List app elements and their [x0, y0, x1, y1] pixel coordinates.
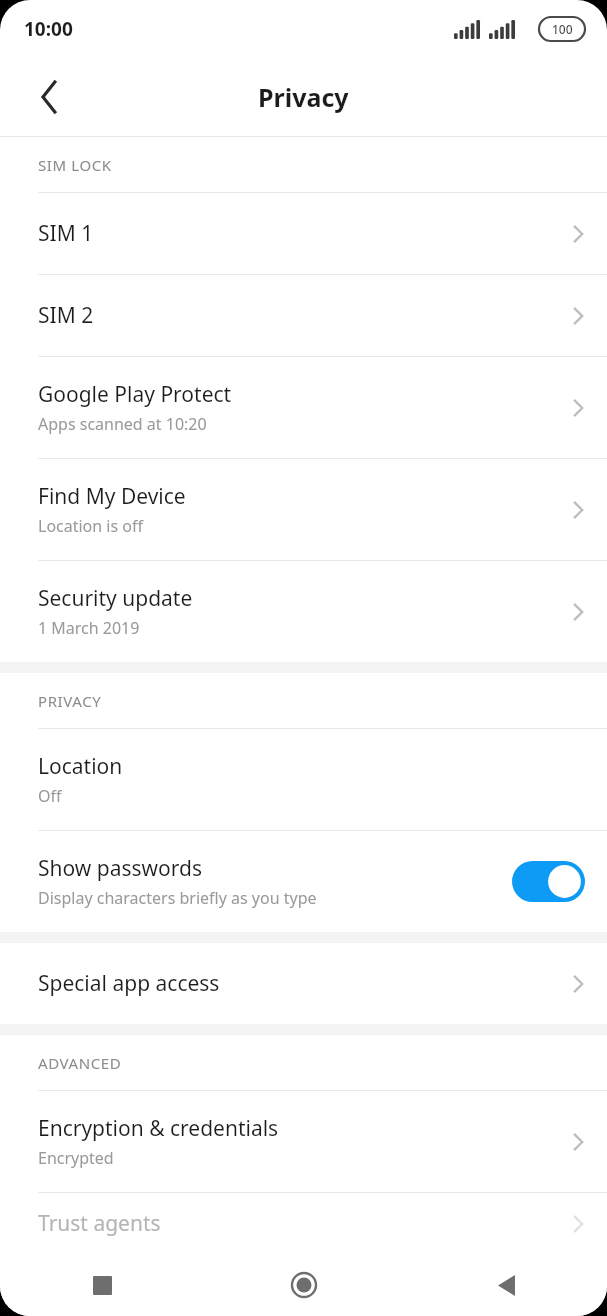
staticText: Security update: [38, 584, 193, 613]
staticText: 1 March 2019: [38, 617, 140, 639]
button[interactable]: Special app access: [0, 943, 607, 1024]
staticText: Find My Device: [38, 482, 186, 511]
button[interactable]: Encryption & credentials: [0, 1091, 607, 1192]
staticText: Special app access: [38, 969, 220, 998]
button[interactable]: Trust agents: [0, 1193, 607, 1254]
staticText: Encrypted: [38, 1147, 114, 1169]
staticText: Google Play Protect: [38, 380, 232, 409]
staticText: SIM LOCK: [38, 155, 112, 175]
staticText: SIM 2: [38, 301, 94, 330]
staticText: Show passwords: [38, 854, 203, 883]
button[interactable]: Security update: [0, 561, 607, 662]
button[interactable]: Recent apps: [76, 1259, 128, 1311]
staticText: Encryption & credentials: [38, 1114, 279, 1143]
button[interactable]: Location: [0, 729, 607, 830]
staticText: 100: [552, 21, 573, 37]
button[interactable]: SIM 2: [0, 275, 607, 356]
button[interactable]: Google Play Protect: [0, 357, 607, 458]
button[interactable]: Find My Device: [0, 459, 607, 560]
staticText: PRIVACY: [38, 691, 102, 711]
button[interactable]: Home: [278, 1259, 330, 1311]
staticText: Privacy: [258, 80, 349, 114]
staticText: Display characters briefly as you type: [38, 887, 317, 909]
button[interactable]: Show passwords: [0, 831, 607, 932]
staticText: Location: [38, 752, 123, 781]
staticText: Trust agents: [38, 1209, 571, 1238]
button[interactable]: Show passwords toggle: [512, 861, 585, 902]
staticText: Location is off: [38, 515, 143, 537]
button[interactable]: SIM 1: [0, 193, 607, 274]
staticText: 10:00: [24, 16, 73, 42]
button[interactable]: Back: [22, 69, 78, 125]
staticText: ADVANCED: [38, 1053, 122, 1073]
staticText: Apps scanned at 10:20: [38, 413, 207, 435]
button[interactable]: Back: [480, 1259, 532, 1311]
staticText: Off: [38, 785, 62, 807]
staticText: SIM 1: [38, 219, 94, 248]
